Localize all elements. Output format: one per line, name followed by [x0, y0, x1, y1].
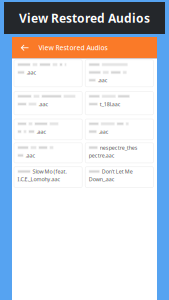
- staticText: .aac: [36, 128, 46, 135]
- button[interactable]: t_18l.aac: [85, 91, 153, 115]
- button[interactable]: .aac: [14, 60, 82, 87]
- button[interactable]: Back: [16, 37, 33, 58]
- button[interactable]: Slow Mo (feat.: [14, 167, 82, 187]
- button[interactable]: Don't Let Me: [85, 167, 153, 187]
- staticText: View Restored Audios: [38, 43, 107, 52]
- staticText: Down_.aac: [89, 176, 115, 183]
- staticText: View Restored Audios: [19, 10, 150, 26]
- button[interactable]: .aac: [14, 119, 82, 140]
- staticText: Slow Mo (feat.: [32, 168, 66, 175]
- staticText: nespectre_thes: [100, 144, 138, 151]
- staticText: I.C.E._Lomohy.aac: [17, 176, 60, 183]
- staticText: pectre.aac: [89, 152, 115, 159]
- staticText: t_18l.aac: [100, 101, 121, 108]
- button[interactable]: .aac: [14, 143, 82, 163]
- button[interactable]: .aac: [14, 91, 82, 115]
- staticText: .aac: [25, 152, 35, 159]
- button[interactable]: nespectre_thes: [85, 143, 153, 163]
- staticText: .aac: [98, 77, 108, 84]
- staticText: .aac: [38, 101, 48, 108]
- staticText: .aac: [26, 69, 36, 76]
- button[interactable]: .aac: [85, 119, 153, 140]
- staticText: .aac: [99, 128, 109, 135]
- staticText: Don't Let Me: [102, 168, 133, 175]
- button[interactable]: .aac: [85, 60, 153, 87]
